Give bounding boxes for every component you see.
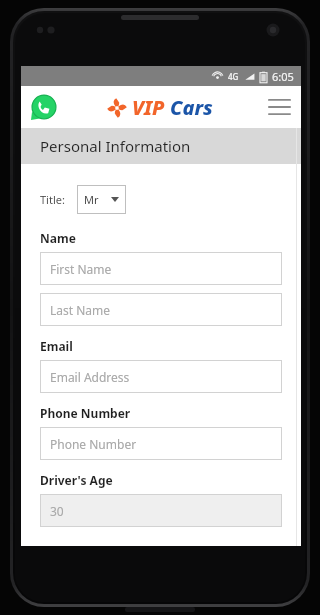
- button[interactable]: Last Name: [40, 293, 282, 326]
- button[interactable]: Phone Number: [40, 427, 282, 460]
- staticText: 30: [50, 503, 64, 519]
- staticText: 6:05: [272, 69, 294, 84]
- staticText: Personal Information: [40, 136, 191, 156]
- button[interactable]: Email Address: [40, 360, 282, 393]
- button[interactable]: Mr: [77, 185, 126, 214]
- staticText: Mr: [84, 192, 99, 207]
- staticText: Name: [40, 230, 76, 246]
- staticText: Last Name: [50, 302, 111, 318]
- staticText: First Name: [50, 261, 112, 277]
- button[interactable]: First Name: [40, 252, 282, 285]
- button[interactable]: WhatsApp: [31, 94, 57, 120]
- staticText: Phone Number: [50, 436, 137, 452]
- staticText: Phone Number: [40, 405, 131, 421]
- button[interactable]: 30: [40, 494, 282, 527]
- staticText: VIP: [132, 94, 165, 121]
- staticText: Cars: [170, 94, 213, 121]
- staticText: Email Address: [50, 369, 130, 385]
- staticText: Driver's Age: [40, 472, 113, 488]
- staticText: Email: [40, 338, 73, 354]
- button[interactable]: Menu: [267, 96, 291, 118]
- staticText: 4G: [228, 71, 239, 82]
- staticText: Title:: [40, 192, 65, 207]
